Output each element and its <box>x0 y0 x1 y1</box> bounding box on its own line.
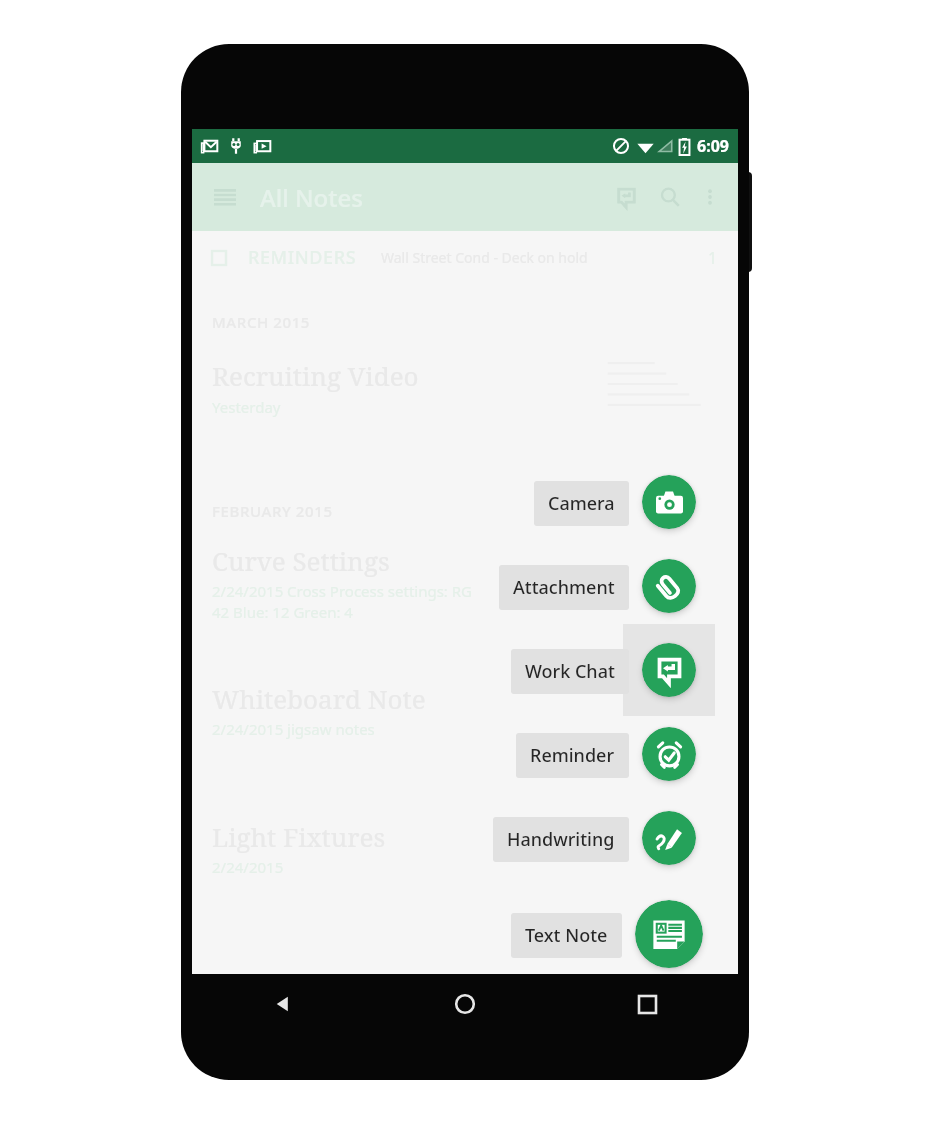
staticText: Whiteboard Note <box>212 681 426 716</box>
staticText: Attachment <box>513 575 615 600</box>
button[interactable]: Recents <box>556 974 738 1034</box>
button[interactable]: Handwriting <box>642 811 696 865</box>
staticText: Camera <box>548 491 615 516</box>
button[interactable]: Text Note <box>635 900 703 968</box>
button[interactable]: Camera <box>534 481 629 526</box>
staticText: Handwriting <box>507 827 615 852</box>
button[interactable]: Navigation drawer <box>204 176 246 218</box>
button[interactable]: Attachment <box>499 565 629 610</box>
button[interactable]: Reminder <box>516 733 629 778</box>
button[interactable]: Handwriting <box>493 817 629 862</box>
staticText: Light Fixtures <box>212 819 386 854</box>
staticText: 1 <box>708 247 718 269</box>
staticText: FEBRUARY 2015 <box>212 501 333 521</box>
staticText: 2/24/2015 <box>212 857 284 877</box>
button[interactable]: Back <box>192 974 374 1034</box>
staticText: Recruiting Video <box>212 358 419 393</box>
button[interactable]: Camera <box>642 475 696 529</box>
staticText: Text Note <box>525 923 608 948</box>
staticText: MARCH 2015 <box>212 312 311 332</box>
button[interactable]: Search <box>648 175 692 219</box>
button[interactable]: Work Chat <box>642 643 696 697</box>
staticText: Reminder <box>530 743 615 768</box>
staticText: REMINDERS <box>248 245 357 270</box>
button[interactable]: Home <box>374 974 556 1034</box>
staticText: 6:09 <box>697 135 729 157</box>
button[interactable]: Work Chat <box>511 649 629 694</box>
staticText: All Notes <box>260 181 363 214</box>
staticText: Wall Street Cond - Deck on hold <box>381 248 588 267</box>
button[interactable]: Reminder <box>642 727 696 781</box>
staticText: Yesterday <box>212 397 281 417</box>
staticText: Work Chat <box>525 659 615 684</box>
staticText: Curve Settings <box>212 543 390 578</box>
button[interactable]: Attachment <box>642 559 696 613</box>
staticText: 2/24/2015 jigsaw notes <box>212 719 375 739</box>
button[interactable]: Work Chat <box>604 175 648 219</box>
button[interactable]: Text Note <box>511 913 622 958</box>
staticText: 2/24/2015 Cross Process settings: RG 42 … <box>212 581 473 623</box>
